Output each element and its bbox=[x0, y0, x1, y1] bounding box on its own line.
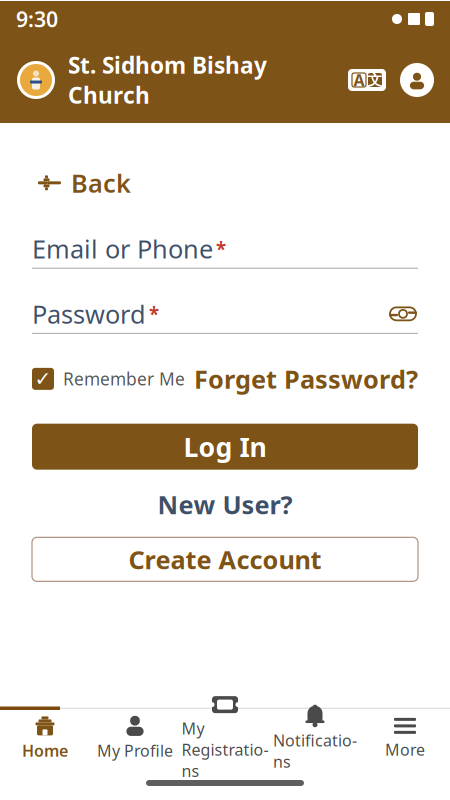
button[interactable]: Translate bbox=[348, 69, 386, 91]
button[interactable]: Forget Password? bbox=[194, 358, 418, 400]
staticText: 文 bbox=[367, 71, 382, 89]
staticText: * bbox=[216, 236, 226, 261]
button[interactable]: Create Account bbox=[32, 537, 418, 581]
button[interactable]: Notifications bbox=[270, 698, 360, 778]
staticText: Log In bbox=[183, 429, 266, 464]
staticText: St. Sidhom Bishay Church bbox=[68, 50, 267, 110]
button[interactable]: Account bbox=[386, 63, 434, 97]
button[interactable]: Back bbox=[34, 158, 135, 208]
staticText: Notifications bbox=[273, 730, 357, 772]
staticText: A bbox=[353, 69, 364, 91]
staticText: Password bbox=[32, 297, 146, 331]
staticText: ✓ bbox=[34, 367, 51, 390]
button[interactable]: ✓ bbox=[32, 363, 185, 394]
staticText: Create Account bbox=[128, 542, 321, 576]
staticText: My Profile bbox=[97, 740, 173, 761]
button[interactable]: More bbox=[360, 710, 450, 766]
button[interactable]: New User? bbox=[157, 482, 292, 527]
staticText: New User? bbox=[157, 488, 292, 521]
staticText: 9:30 bbox=[16, 5, 58, 33]
staticText: My Registrations bbox=[181, 718, 268, 781]
staticText: Remember Me bbox=[63, 367, 185, 390]
staticText: Back bbox=[71, 166, 131, 200]
button[interactable]: My Profile bbox=[90, 709, 180, 767]
staticText: * bbox=[149, 301, 159, 326]
button[interactable]: Home bbox=[0, 709, 90, 767]
button[interactable]: My Registrations bbox=[180, 689, 270, 787]
staticText: More bbox=[385, 739, 425, 760]
staticText: Email or Phone bbox=[32, 232, 213, 265]
button[interactable]: Log In bbox=[32, 424, 418, 470]
button[interactable]: Show password bbox=[388, 303, 418, 325]
staticText: Home bbox=[22, 740, 68, 761]
staticText: Forget Password? bbox=[194, 362, 418, 396]
